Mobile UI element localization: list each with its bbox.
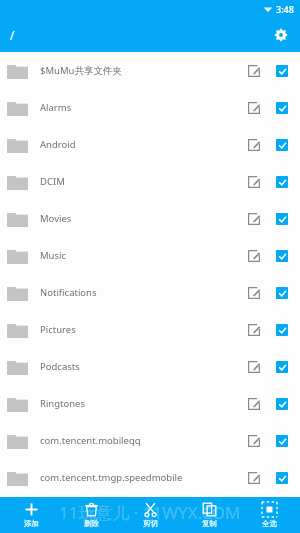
button[interactable]: Rename (243, 245, 265, 267)
button[interactable]: Select (271, 171, 293, 193)
button[interactable]: Cut (122, 497, 178, 533)
staticText: Movies (40, 212, 243, 225)
button[interactable]: Rename (243, 60, 265, 82)
staticText: Alarms (40, 101, 243, 114)
button[interactable]: Select (271, 393, 293, 415)
button[interactable]: Rename (243, 467, 265, 489)
staticText: 添加 (24, 519, 39, 528)
button[interactable]: Select (271, 319, 293, 341)
button[interactable]: Rename (243, 430, 265, 452)
button[interactable]: Rename (243, 282, 265, 304)
button[interactable]: Rename (243, 208, 265, 230)
button[interactable]: Select (271, 134, 293, 156)
button[interactable]: Rename (243, 356, 265, 378)
staticText: 3:48 (276, 3, 294, 15)
button[interactable]: $MuMu共享文件夹 (0, 52, 300, 89)
button[interactable]: Rename (243, 393, 265, 415)
button[interactable]: Delete (63, 497, 119, 533)
button[interactable]: Rename (243, 97, 265, 119)
staticText: $MuMu共享文件夹 (40, 64, 243, 77)
button[interactable]: Movies (0, 200, 300, 237)
button[interactable]: Select (271, 245, 293, 267)
button[interactable]: Alarms (0, 89, 300, 126)
button[interactable]: Select (271, 467, 293, 489)
button[interactable]: Android (0, 126, 300, 163)
button[interactable]: Add (3, 497, 59, 533)
button[interactable]: Select (271, 430, 293, 452)
staticText: Android (40, 138, 243, 151)
staticText: 删除 (84, 519, 99, 528)
button[interactable]: Podcasts (0, 348, 300, 385)
staticText: Notifications (40, 286, 243, 299)
button[interactable]: DCIM (0, 163, 300, 200)
button[interactable]: Select (271, 356, 293, 378)
button[interactable]: Rename (243, 134, 265, 156)
staticText: 剪切 (143, 519, 158, 528)
staticText: DCIM (40, 175, 243, 188)
button[interactable]: com.tencent.tmgp.speedmobile (0, 459, 300, 496)
button[interactable]: com.tencent.mobileqq (0, 422, 300, 459)
button[interactable]: Select (271, 60, 293, 82)
staticText: Podcasts (40, 360, 243, 373)
button[interactable]: Pictures (0, 311, 300, 348)
staticText: Music (40, 249, 243, 262)
button[interactable]: Settings (268, 22, 294, 48)
staticText: Ringtones (40, 397, 243, 410)
button[interactable]: Select (271, 282, 293, 304)
button[interactable]: Ringtones (0, 385, 300, 422)
staticText: Pictures (40, 323, 243, 336)
staticText: 复制 (202, 519, 217, 528)
button[interactable]: Notifications (0, 274, 300, 311)
button[interactable]: Rename (243, 171, 265, 193)
button[interactable]: Copy (181, 497, 237, 533)
staticText: com.tencent.mobileqq (40, 434, 243, 447)
button[interactable]: Select all (241, 497, 297, 533)
button[interactable]: Rename (243, 319, 265, 341)
staticText: / (10, 27, 15, 43)
staticText: com.tencent.tmgp.speedmobile (40, 471, 243, 484)
staticText: 全选 (262, 519, 277, 528)
staticText: 11玩意儿 · 11WYX.COM (59, 501, 241, 524)
button[interactable]: Music (0, 237, 300, 274)
button[interactable]: Select (271, 208, 293, 230)
button[interactable]: Select (271, 97, 293, 119)
